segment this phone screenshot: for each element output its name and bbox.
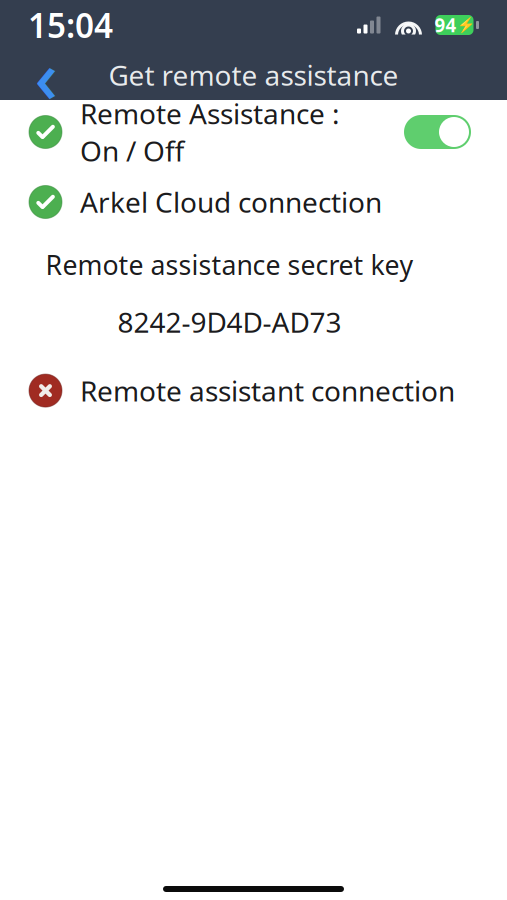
staticText: ⚡ <box>456 17 474 33</box>
staticText: Remote Assistance : On / Off <box>80 95 340 169</box>
staticText: ‹ <box>34 27 57 123</box>
staticText: 8242-9D4D-AD73 <box>117 303 341 341</box>
button[interactable]: Arkel Cloud connection <box>0 179 507 225</box>
staticText: Arkel Cloud connection <box>80 183 382 221</box>
staticText: Remote assistant connection <box>80 372 455 409</box>
staticText: Remote assistance secret key <box>45 247 413 282</box>
staticText: 94 <box>434 13 456 37</box>
staticText: 15:04 <box>28 3 113 47</box>
button[interactable]: Back <box>19 50 73 100</box>
button[interactable]: Remote Assistance : On / Off <box>0 109 507 155</box>
button[interactable]: Remote assistant connection <box>0 368 507 414</box>
staticText: Get remote assistance <box>108 56 398 94</box>
